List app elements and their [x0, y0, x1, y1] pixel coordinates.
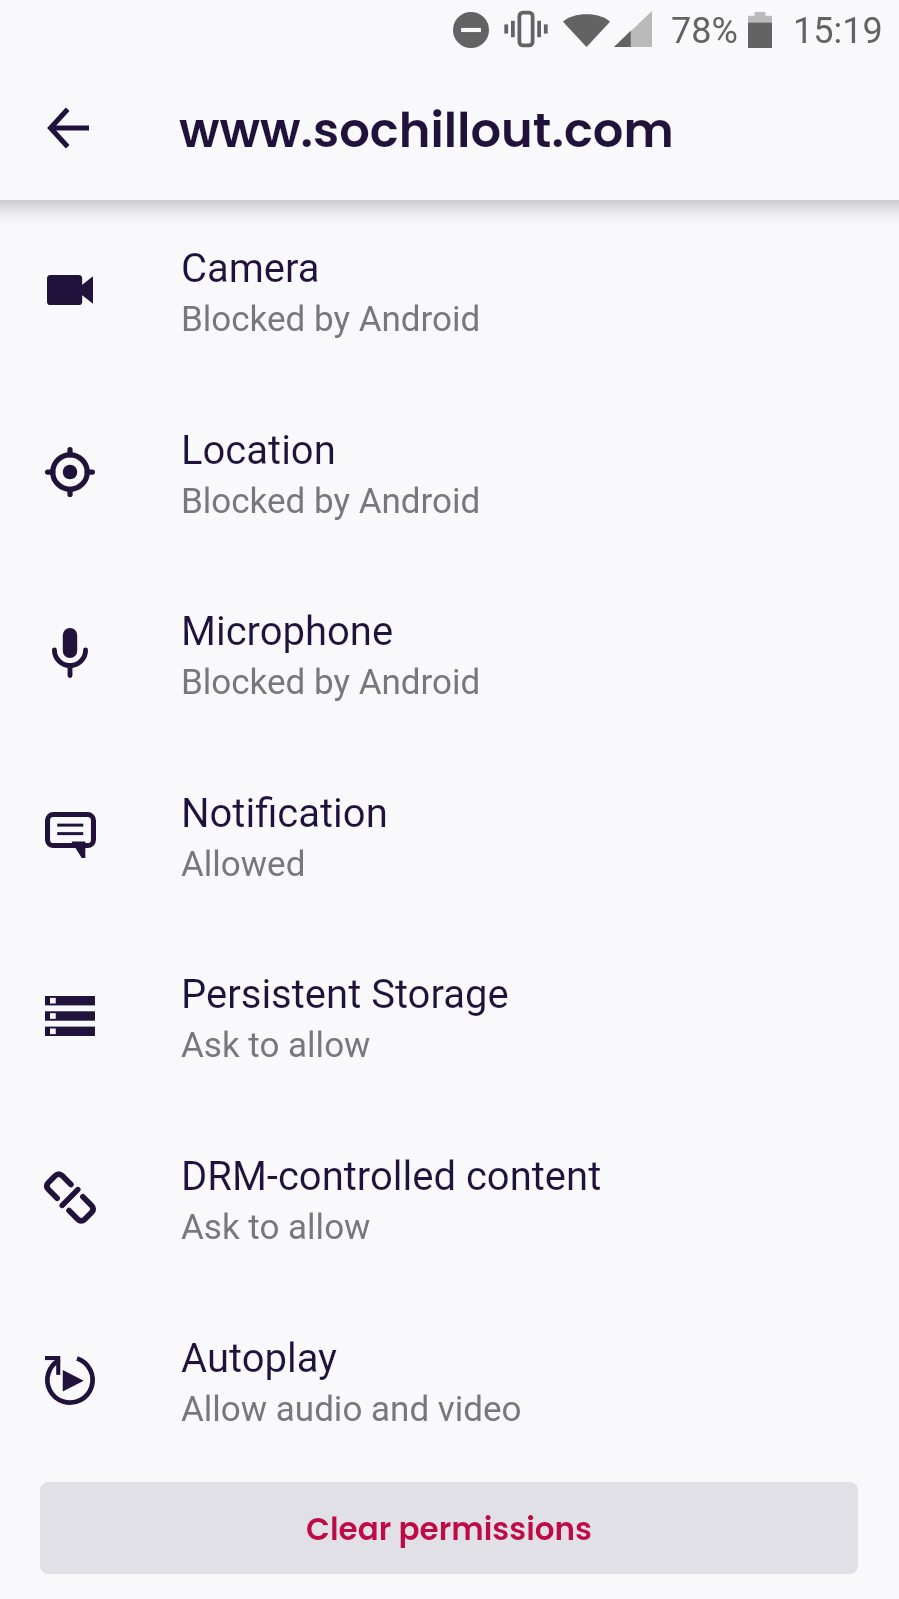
staticText: Camera [181, 245, 320, 292]
staticText: www.sochillout.com [179, 97, 674, 164]
staticText: Allowed [181, 844, 306, 885]
staticText: 15:19 [793, 10, 883, 52]
staticText: DRM-controlled content [181, 1153, 602, 1200]
button[interactable]: Microphone [0, 589, 899, 751]
button[interactable]: Location [0, 408, 899, 570]
staticText: Autoplay [181, 1335, 338, 1382]
staticText: Persistent Storage [181, 971, 509, 1018]
button[interactable]: Persistent Storage [0, 952, 899, 1114]
staticText: Location [181, 427, 336, 474]
button[interactable]: Camera [0, 226, 899, 388]
staticText: Blocked by Android [181, 299, 481, 340]
button[interactable]: Notification [0, 771, 899, 933]
staticText: Blocked by Android [181, 481, 481, 522]
staticText: Ask to allow [181, 1207, 371, 1248]
button[interactable]: Autoplay [0, 1316, 899, 1478]
staticText: Allow audio and video [181, 1389, 522, 1430]
staticText: Clear permissions [306, 1507, 592, 1550]
staticText: Microphone [181, 608, 394, 655]
staticText: Notification [181, 790, 388, 837]
staticText: Ask to allow [181, 1025, 371, 1066]
staticText: 78% [671, 10, 738, 52]
button[interactable]: DRM-controlled content [0, 1134, 899, 1296]
staticText: Blocked by Android [181, 662, 481, 703]
button[interactable]: Back [38, 98, 98, 158]
button[interactable]: Clear permissions [40, 1482, 858, 1574]
